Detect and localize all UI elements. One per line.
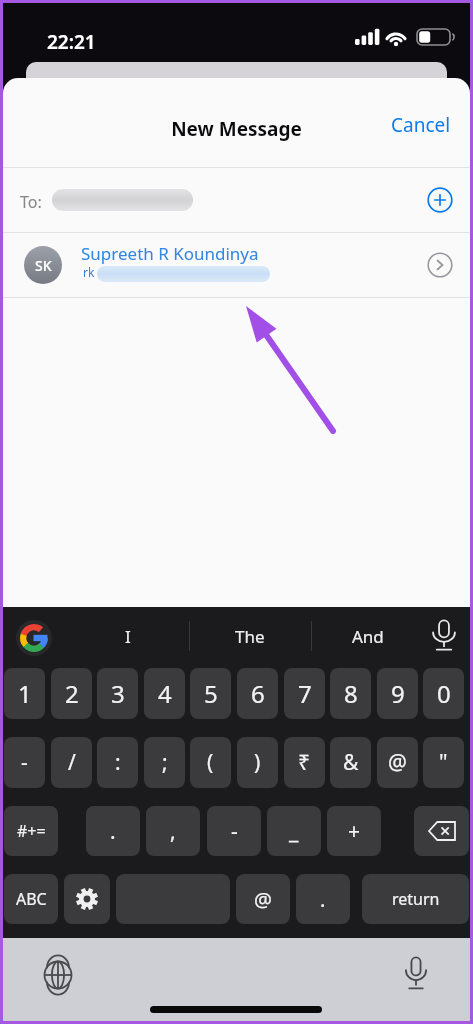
- button[interactable]: -: [207, 806, 261, 856]
- staticText: 5: [204, 677, 218, 710]
- staticText: SK: [35, 256, 52, 275]
- staticText: 7: [298, 677, 312, 710]
- staticText: -: [231, 817, 238, 846]
- staticText: ABC: [16, 888, 47, 910]
- button[interactable]: I: [90, 613, 166, 659]
- staticText: New Message: [3, 116, 470, 142]
- button[interactable]: [43, 960, 73, 990]
- button[interactable]: 4: [144, 668, 185, 719]
- staticText: 0: [437, 677, 451, 710]
- staticText: ": [439, 748, 448, 777]
- button[interactable]: And: [330, 613, 406, 659]
- button[interactable]: The: [212, 613, 288, 659]
- button[interactable]: [427, 252, 453, 278]
- button[interactable]: 9: [377, 668, 418, 719]
- staticText: (: [207, 748, 214, 777]
- button[interactable]: +: [327, 806, 381, 856]
- button[interactable]: [404, 956, 428, 992]
- staticText: ;: [162, 748, 168, 777]
- staticText: rk: [83, 264, 95, 280]
- staticText: .: [320, 886, 326, 913]
- button[interactable]: .: [296, 874, 350, 924]
- button[interactable]: 5: [190, 668, 231, 719]
- staticText: 22:21: [47, 29, 96, 55]
- button[interactable]: /: [51, 737, 92, 788]
- staticText: And: [352, 625, 384, 648]
- staticText: Supreeth R Koundinya: [81, 242, 259, 265]
- staticText: ₹: [298, 748, 311, 777]
- button[interactable]: (: [190, 737, 231, 788]
- staticText: return: [392, 888, 440, 910]
- button[interactable]: [64, 874, 110, 924]
- staticText: The: [235, 625, 265, 648]
- staticText: .: [110, 817, 116, 846]
- button[interactable]: -: [4, 737, 45, 788]
- staticText: :: [115, 748, 121, 777]
- button[interactable]: :: [97, 737, 138, 788]
- staticText: +: [348, 817, 361, 846]
- staticText: 3: [111, 677, 125, 710]
- button[interactable]: 7: [284, 668, 325, 719]
- staticText: 4: [158, 677, 172, 710]
- button[interactable]: [116, 874, 230, 924]
- button[interactable]: Cancel: [381, 108, 461, 142]
- button[interactable]: return: [362, 874, 469, 924]
- button[interactable]: @: [236, 874, 290, 924]
- button[interactable]: &: [330, 737, 371, 788]
- button[interactable]: 6: [237, 668, 278, 719]
- button[interactable]: 0: [423, 668, 464, 719]
- button[interactable]: To:: [3, 168, 470, 232]
- button[interactable]: ABC: [4, 874, 58, 924]
- button[interactable]: [431, 619, 457, 653]
- staticText: #+=: [17, 820, 46, 842]
- staticText: /: [68, 748, 76, 777]
- button[interactable]: SK: [3, 233, 470, 297]
- button[interactable]: 3: [97, 668, 138, 719]
- button[interactable]: .: [86, 806, 140, 856]
- button[interactable]: ,: [146, 806, 200, 856]
- staticText: @: [254, 886, 272, 913]
- staticText: ): [254, 748, 261, 777]
- staticText: 1: [18, 677, 32, 710]
- staticText: 8: [344, 677, 358, 710]
- button[interactable]: [414, 806, 469, 856]
- staticText: To:: [20, 191, 42, 213]
- button[interactable]: @: [377, 737, 418, 788]
- staticText: 6: [251, 677, 265, 710]
- button[interactable]: ;: [144, 737, 185, 788]
- button[interactable]: [427, 187, 453, 213]
- staticText: 9: [391, 677, 405, 710]
- button[interactable]: _: [267, 806, 321, 856]
- button[interactable]: 1: [4, 668, 45, 719]
- staticText: Cancel: [391, 112, 451, 138]
- staticText: @: [388, 748, 407, 777]
- staticText: -: [21, 748, 28, 777]
- button[interactable]: 2: [51, 668, 92, 719]
- button[interactable]: ): [237, 737, 278, 788]
- staticText: _: [289, 817, 299, 846]
- staticText: I: [125, 625, 131, 648]
- staticText: 2: [65, 677, 79, 710]
- button[interactable]: ": [423, 737, 464, 788]
- button[interactable]: [16, 620, 52, 656]
- button[interactable]: ₹: [284, 737, 325, 788]
- button[interactable]: #+=: [4, 806, 58, 856]
- button[interactable]: 8: [330, 668, 371, 719]
- staticText: ,: [170, 817, 176, 846]
- staticText: &: [343, 748, 359, 777]
